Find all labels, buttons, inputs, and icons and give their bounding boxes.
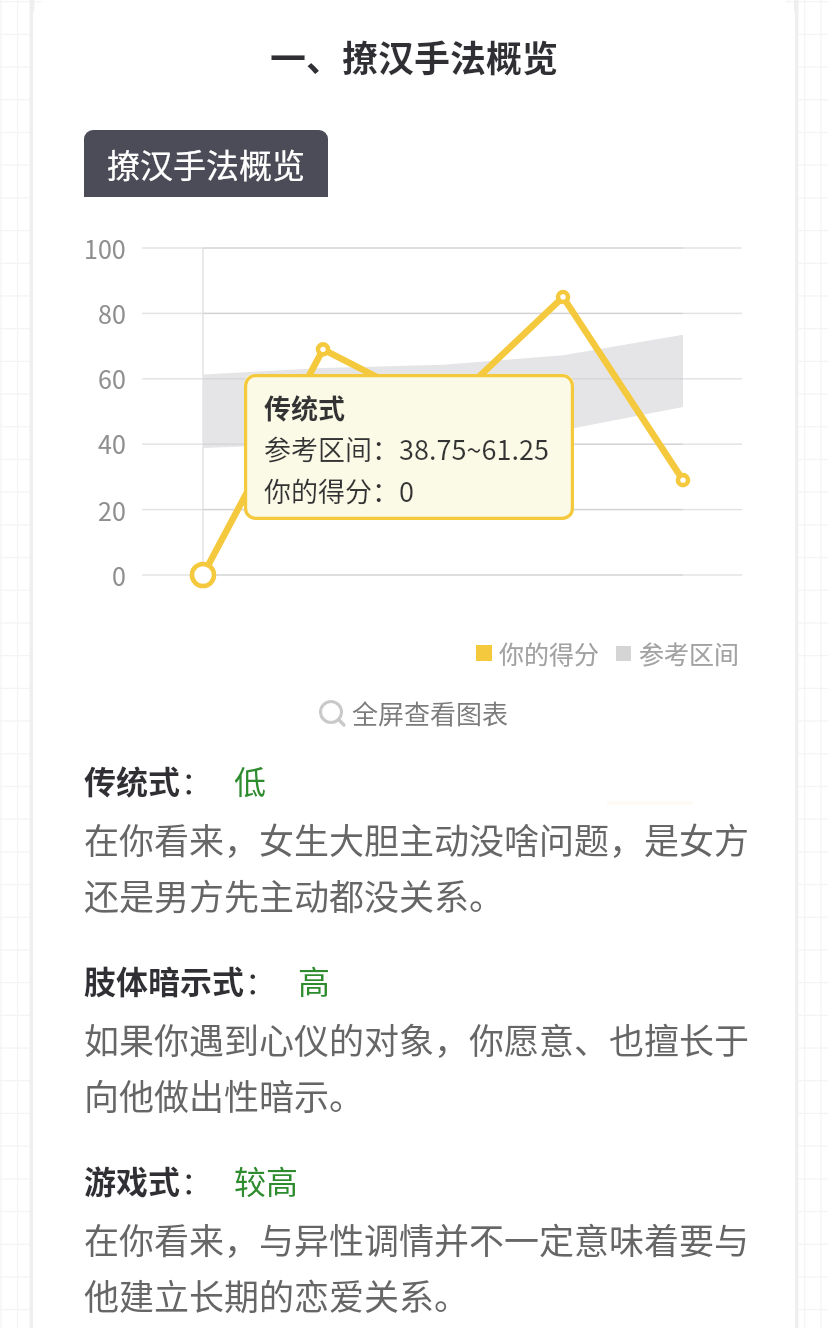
staticText: 你的得分 (499, 635, 600, 671)
staticText: 肢体暗示式 (84, 957, 245, 1003)
staticText: ： (181, 758, 212, 803)
staticText: 20 (98, 492, 126, 528)
staticText: 一、撩汉手法概览 (270, 30, 559, 82)
staticText: 撩汉手法概览 (107, 140, 305, 188)
staticText: 参考区间 (639, 635, 740, 671)
staticText: 全屏查看图表 (352, 694, 509, 732)
button[interactable]: Full screen chart (318, 694, 509, 732)
staticText: 传统式 (264, 388, 345, 427)
staticText: 0 (112, 557, 126, 593)
staticText: 如果你遇到心仪的对象，你愿意、也擅长于 向他做出性暗示。 (84, 1013, 750, 1120)
staticText: 40 (98, 425, 126, 461)
other: Full screen chart (318, 698, 348, 728)
staticText: 游戏式 (84, 1157, 181, 1203)
staticText: 高 (298, 957, 331, 1003)
staticText: 在你看来，女生大胆主动没啥问题，是女方 还是男方先主动都没关系。 (84, 813, 750, 920)
staticText: 100 (84, 230, 126, 266)
staticText: ： (181, 1158, 212, 1203)
staticText: 你的得分：0 (264, 471, 414, 510)
staticText: 80 (98, 295, 126, 331)
staticText: 参考区间：38.75~61.25 (264, 429, 549, 468)
staticText: ： (245, 958, 276, 1003)
staticText: 60 (98, 360, 126, 396)
staticText: 传统式 (84, 757, 181, 803)
button[interactable]: 撩汉手法概览 (84, 130, 328, 197)
staticText: 在你看来，与异性调情并不一定意味着要与 他建立长期的恋爱关系。 (84, 1213, 750, 1320)
staticText: 较高 (234, 1157, 299, 1203)
staticText: 低 (234, 757, 267, 803)
